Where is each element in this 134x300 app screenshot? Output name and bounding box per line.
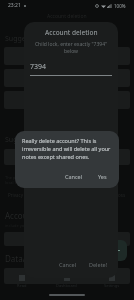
button[interactable]: 7394 (30, 62, 112, 76)
staticText: oss (118, 192, 126, 198)
staticText: Data/A (5, 253, 31, 264)
staticText: local cur (5, 180, 21, 185)
button[interactable]: Dashboard (44, 270, 89, 292)
button[interactable] (4, 47, 130, 65)
button[interactable]: Read (0, 270, 44, 292)
staticText: Privacy (8, 192, 24, 198)
staticText: Settings (104, 283, 120, 288)
staticText: Account deletion (45, 28, 98, 37)
button[interactable] (4, 69, 130, 87)
button[interactable] (4, 268, 130, 284)
staticText: 23:21 (8, 2, 21, 9)
button[interactable]: Cancel (61, 171, 87, 182)
staticText: 7394 (30, 62, 47, 72)
staticText: Really delete account? This is irreversi… (22, 137, 112, 161)
staticText: include yo (5, 223, 25, 228)
button[interactable]: Delete! (85, 259, 112, 270)
staticText: Yes (98, 173, 107, 180)
staticText: Cancel (59, 261, 77, 268)
staticText: Cancel (65, 173, 83, 180)
staticText: Sugge (5, 135, 26, 145)
staticText: Read (17, 283, 27, 288)
staticText: Sugge (5, 34, 26, 44)
staticText: Delete! (89, 261, 108, 268)
button[interactable]: Add note (106, 240, 127, 261)
staticText: The p (5, 175, 16, 180)
button[interactable]: Yes (94, 171, 111, 182)
button[interactable]: Cancel (55, 259, 81, 270)
staticText: Dashboard (56, 283, 77, 288)
staticText: Child lock, enter exactly "7394" below (28, 41, 114, 55)
button[interactable] (4, 149, 130, 165)
staticText: 100% (114, 3, 126, 9)
staticText: Account deletion (47, 13, 87, 20)
button[interactable]: Settings (89, 270, 134, 292)
staticText: Accou (5, 210, 28, 221)
